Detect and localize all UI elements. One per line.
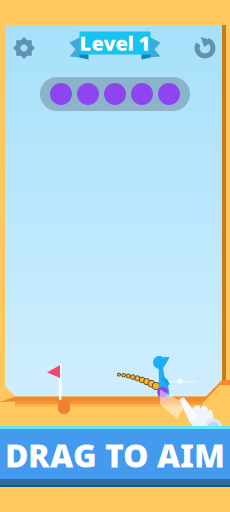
staticText: DRAG TO AIM (5, 434, 225, 476)
staticText: Level 1 (79, 30, 150, 56)
button[interactable]: Restart level (194, 37, 216, 59)
button[interactable]: Settings (13, 37, 35, 59)
